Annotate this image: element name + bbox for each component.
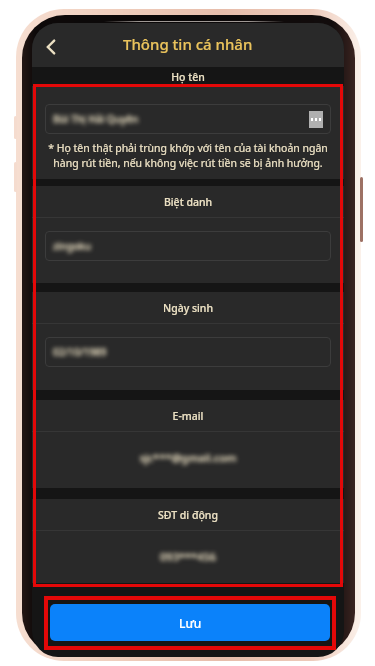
staticText: * Họ tên thật phải trùng khớp với tên củ…: [47, 141, 329, 170]
staticText: SĐT di động: [32, 508, 344, 522]
staticText: E-mail: [32, 409, 344, 423]
staticText: 093***456: [32, 549, 344, 564]
staticText: zingoku: [53, 239, 331, 253]
button[interactable]: zingoku: [45, 231, 331, 261]
staticText: sjc***@gmail.com: [32, 450, 344, 465]
staticText: Ngày sinh: [32, 301, 344, 315]
staticText: 02/10/1989: [53, 345, 331, 359]
staticText: Lưu: [179, 615, 202, 631]
button[interactable]: Bùi Thị Hải Quyên: [45, 104, 331, 134]
button[interactable]: 02/10/1989: [45, 337, 331, 367]
staticText: Bùi Thị Hải Quyên: [53, 112, 331, 126]
staticText: Biệt danh: [32, 195, 344, 209]
staticText: Thông tin cá nhân: [123, 34, 253, 54]
staticText: Họ tên: [32, 70, 344, 84]
button[interactable]: Lưu: [50, 604, 330, 641]
button[interactable]: Back: [34, 30, 68, 64]
